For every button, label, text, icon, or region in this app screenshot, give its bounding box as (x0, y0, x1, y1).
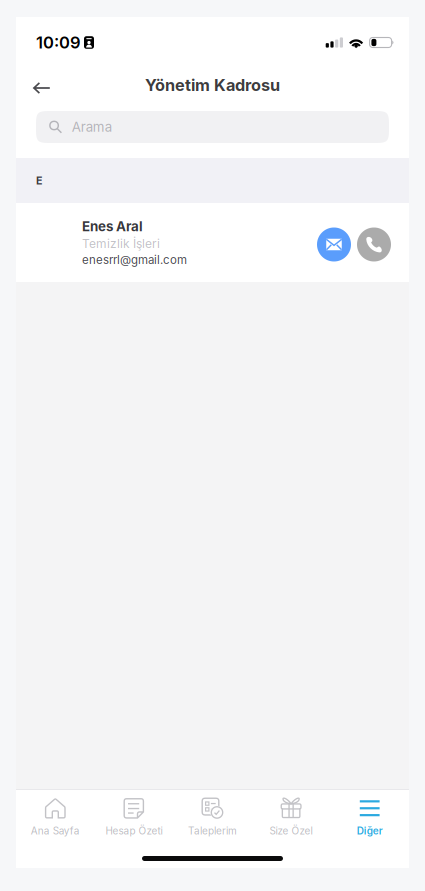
button[interactable]: Taleplerim (173, 788, 252, 838)
button[interactable]: Diğer (330, 788, 409, 838)
staticText: Ana Sayfa (31, 825, 80, 837)
button[interactable]: Back (16, 65, 73, 103)
staticText: Size Özel (270, 825, 313, 837)
button[interactable]: Enes Aral (16, 203, 409, 282)
staticText: Temizlik İşleri (82, 236, 160, 251)
staticText: Yönetim Kadrosu (145, 75, 280, 95)
button[interactable]: Hesap Özeti (95, 788, 173, 838)
button[interactable]: Call (357, 225, 391, 259)
staticText: Hesap Özeti (105, 825, 162, 837)
staticText: enesrrl@gmail.com (82, 253, 187, 267)
staticText: Taleplerim (188, 825, 237, 837)
staticText: 10:09 (36, 32, 81, 52)
button[interactable]: Size Özel (252, 788, 330, 838)
button[interactable]: Send email (317, 225, 351, 259)
staticText: Arama (72, 119, 112, 135)
staticText: E (36, 174, 42, 187)
staticText: Diğer (357, 825, 383, 837)
button[interactable]: Arama (36, 111, 389, 143)
staticText: Enes Aral (82, 218, 143, 234)
button[interactable]: Ana Sayfa (16, 788, 95, 838)
